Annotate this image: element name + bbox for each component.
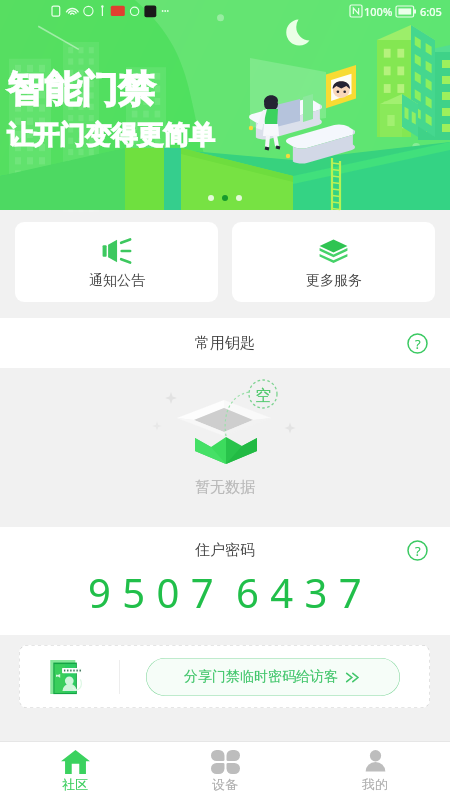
staticText: 通知公告 xyxy=(89,272,145,290)
staticText: 设备 xyxy=(212,776,238,792)
staticText: 社区 xyxy=(62,776,88,792)
button[interactable]: 帮助 xyxy=(407,333,428,354)
staticText: 空 xyxy=(255,386,271,406)
staticText: 智能门禁 xyxy=(7,66,155,113)
button[interactable]: 分享门禁临时密码给访客 xyxy=(19,645,430,708)
button[interactable]: 设备 xyxy=(150,742,300,800)
staticText: 让开门变得更简单 xyxy=(7,119,215,152)
staticText: 100% xyxy=(364,4,393,19)
staticText: 更多服务 xyxy=(306,272,362,290)
staticText: 住户密码 xyxy=(195,541,255,560)
staticText: 6:05 xyxy=(420,4,442,19)
button[interactable]: 更多服务 xyxy=(232,222,435,302)
button[interactable]: 我的 xyxy=(300,742,450,800)
staticText: ? xyxy=(415,542,421,560)
staticText: 9 5 0 7 6 4 3 7 xyxy=(88,565,363,619)
staticText: ? xyxy=(415,335,421,353)
staticText: 暂无数据 xyxy=(195,478,255,497)
staticText: 我的 xyxy=(362,776,388,792)
staticText: 分享门禁临时密码给访客 xyxy=(184,668,338,686)
staticText: 常用钥匙 xyxy=(195,334,255,353)
button[interactable]: 社区 xyxy=(0,742,150,800)
button[interactable]: 帮助 xyxy=(407,540,428,561)
button[interactable]: 通知公告 xyxy=(15,222,218,302)
